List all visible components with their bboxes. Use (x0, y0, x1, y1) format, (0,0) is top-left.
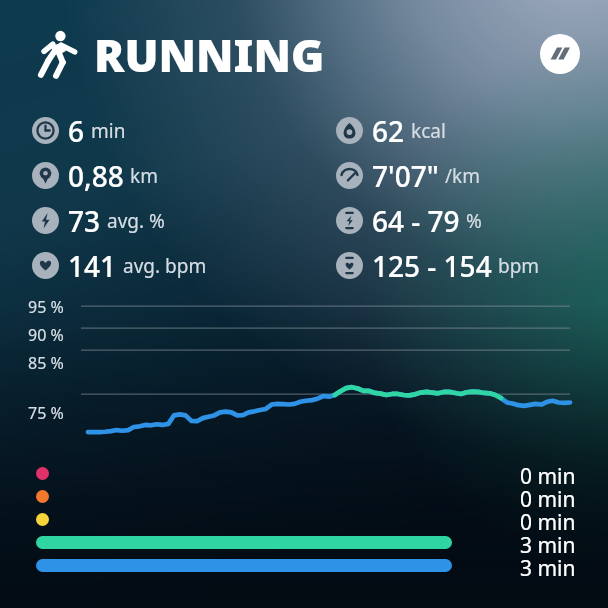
staticText: avg. % (107, 208, 165, 234)
staticText: 0,88 (68, 157, 124, 195)
staticText: 95 % (28, 296, 64, 318)
staticText: 73 (68, 202, 101, 240)
staticText: 0 min (520, 485, 576, 508)
button[interactable]: 0 min (0, 508, 608, 531)
button[interactable]: 3 min (0, 554, 608, 577)
staticText: 3 min (520, 554, 576, 577)
staticText: 7'07" (372, 157, 439, 195)
button[interactable]: 6 (0, 108, 304, 153)
staticText: 125 - 154 (372, 247, 492, 285)
button[interactable]: 3 min (0, 531, 608, 554)
button[interactable]: 141 (0, 243, 304, 288)
button[interactable]: 0 min (0, 462, 608, 485)
staticText: min (91, 118, 126, 144)
staticText: bpm (498, 253, 540, 279)
staticText: avg. bpm (123, 253, 207, 279)
button[interactable]: App logo (540, 34, 580, 74)
staticText: 141 (68, 247, 117, 285)
staticText: 62 (372, 112, 405, 150)
staticText: 0 min (520, 508, 576, 531)
button[interactable]: 125 - 154 (304, 243, 608, 288)
staticText: 0 min (520, 462, 576, 485)
button[interactable]: 0,88 (0, 153, 304, 198)
button[interactable]: 0 min (0, 485, 608, 508)
button[interactable]: 7'07" (304, 153, 608, 198)
staticText: /km (445, 163, 480, 189)
staticText: 6 (68, 112, 85, 150)
staticText: % (466, 208, 482, 234)
staticText: 85 % (28, 352, 64, 374)
button[interactable]: 64 - 79 (304, 198, 608, 243)
staticText: 90 % (28, 324, 64, 346)
staticText: 3 min (520, 531, 576, 554)
staticText: km (130, 163, 158, 189)
staticText: kcal (411, 118, 446, 144)
staticText: 64 - 79 (372, 202, 460, 240)
button[interactable]: 62 (304, 108, 608, 153)
staticText: 75 % (28, 402, 64, 424)
staticText: RUNNING (94, 24, 325, 85)
button[interactable]: 73 (0, 198, 304, 243)
